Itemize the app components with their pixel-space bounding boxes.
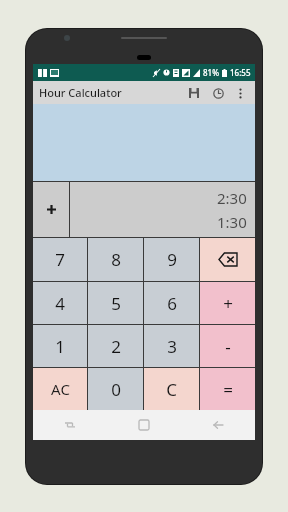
button[interactable]: Home [107, 410, 181, 440]
staticText: = [223, 378, 233, 401]
button[interactable]: Recent apps [33, 410, 107, 440]
staticText: 7 [55, 248, 65, 271]
button[interactable]: Backspace [200, 238, 255, 281]
button[interactable]: 8 [88, 238, 143, 281]
staticText: 9 [167, 248, 177, 271]
button[interactable]: Back [181, 410, 255, 440]
button[interactable]: 2 [88, 325, 143, 367]
button[interactable]: 0 [88, 368, 143, 410]
button[interactable]: = [200, 368, 255, 410]
staticText: C [166, 378, 177, 401]
button[interactable]: History [208, 83, 228, 103]
staticText: AC [51, 379, 70, 399]
button[interactable]: 7 [33, 238, 87, 281]
staticText: 8 [111, 248, 121, 271]
staticText: + [223, 292, 233, 315]
button[interactable]: - [200, 325, 255, 367]
button[interactable]: + [200, 282, 255, 324]
staticText: 81% [203, 67, 219, 78]
staticText: 2 [111, 335, 121, 358]
staticText: 4 [55, 292, 65, 315]
button[interactable]: 1 [33, 325, 87, 367]
staticText: 5 [111, 292, 121, 315]
staticText: 1 [55, 335, 65, 358]
staticText: 0 [111, 378, 121, 401]
button[interactable]: AC [33, 368, 87, 410]
staticText: 16:55 [230, 67, 251, 78]
button[interactable]: 3 [144, 325, 199, 367]
button[interactable]: 9 [144, 238, 199, 281]
staticText: 6 [167, 292, 177, 315]
staticText: 1:30 [217, 212, 247, 232]
button[interactable]: More options [231, 84, 249, 102]
staticText: 3 [167, 335, 177, 358]
button[interactable]: 5 [88, 282, 143, 324]
staticText: - [225, 335, 231, 358]
button[interactable]: C [144, 368, 199, 410]
button[interactable]: 4 [33, 282, 87, 324]
button[interactable]: Save [184, 83, 204, 103]
staticText: 2:30 [217, 188, 247, 208]
staticText: Hour Calculator [39, 85, 122, 100]
button[interactable]: 6 [144, 282, 199, 324]
